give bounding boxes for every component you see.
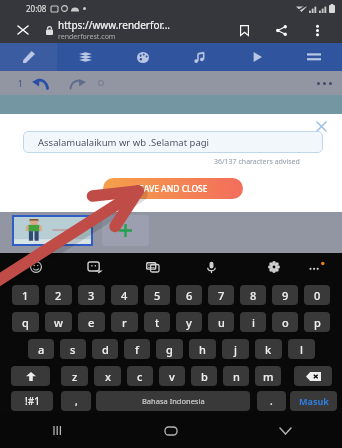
button[interactable]: Shift <box>11 366 50 386</box>
staticText: h <box>199 342 206 357</box>
staticText: https://www.renderfor... <box>58 18 171 32</box>
staticText: 4 <box>121 288 128 303</box>
button[interactable]: n <box>223 366 249 386</box>
button[interactable]: u <box>208 312 234 332</box>
button[interactable]: History <box>93 71 109 95</box>
button[interactable]: 3 <box>78 285 105 305</box>
button[interactable]: Redo <box>67 71 89 95</box>
button[interactable]: 4 <box>111 285 138 305</box>
staticText: 9 <box>282 288 289 303</box>
button[interactable]: 0 <box>304 285 330 305</box>
staticText: g <box>166 342 173 357</box>
button[interactable]: x <box>94 366 121 386</box>
button[interactable]: Home <box>114 413 228 448</box>
staticText: z <box>72 369 78 384</box>
button[interactable]: 7 <box>208 285 234 305</box>
button[interactable]: More <box>310 71 338 95</box>
button[interactable]: Share <box>260 17 302 43</box>
button[interactable]: Back <box>228 413 342 448</box>
button[interactable]: i <box>240 312 266 332</box>
button[interactable]: Close <box>311 116 331 136</box>
staticText: 5 <box>154 288 161 303</box>
button[interactable]: a <box>28 339 54 359</box>
button[interactable]: 5 <box>144 285 170 305</box>
staticText: d <box>102 342 109 357</box>
button[interactable]: More options <box>302 17 333 43</box>
staticText: u <box>218 315 225 330</box>
button[interactable]: t <box>144 312 170 332</box>
staticText: k <box>265 342 272 357</box>
button[interactable]: c <box>127 366 153 386</box>
staticText: w <box>54 315 63 330</box>
staticText: renderforest.com <box>58 32 116 42</box>
staticText: e <box>88 315 95 330</box>
button[interactable]: w <box>45 312 72 332</box>
button[interactable]: Preview <box>228 43 285 71</box>
button[interactable]: v <box>159 366 185 386</box>
staticText: x <box>105 369 111 384</box>
button[interactable]: q <box>12 312 39 332</box>
button[interactable]: Add scene <box>102 215 149 246</box>
button[interactable]: Backspace <box>294 366 332 386</box>
staticText: p <box>314 315 321 330</box>
staticText: r <box>122 315 127 330</box>
button[interactable]: 6 <box>176 285 202 305</box>
button[interactable]: e <box>78 312 105 332</box>
button[interactable]: Voice input <box>197 253 225 281</box>
button[interactable]: Recents <box>0 413 114 448</box>
button[interactable]: Emoji <box>22 253 50 281</box>
button[interactable]: f <box>124 339 150 359</box>
button[interactable]: SAVE AND CLOSE <box>103 178 243 199</box>
staticText: !#1 <box>25 394 40 408</box>
button[interactable]: g <box>156 339 183 359</box>
staticText: 3 <box>88 288 95 303</box>
button[interactable]: y <box>176 312 202 332</box>
button[interactable]: Masuk <box>290 391 337 411</box>
button[interactable]: z <box>61 366 88 386</box>
button[interactable]: Edit <box>0 43 57 71</box>
button[interactable]: k <box>255 339 282 359</box>
button[interactable]: . <box>257 391 286 411</box>
staticText: Bahasa Indonesia <box>142 396 205 406</box>
button[interactable]: d <box>92 339 118 359</box>
staticText: 6 <box>186 288 193 303</box>
button[interactable]: l <box>288 339 315 359</box>
button[interactable]: 9 <box>272 285 298 305</box>
staticText: t <box>155 315 160 330</box>
button[interactable]: More <box>302 253 330 281</box>
button[interactable]: !#1 <box>11 391 53 411</box>
button[interactable]: Music <box>171 43 228 71</box>
button[interactable]: Close tab <box>0 17 46 43</box>
staticText: n <box>233 369 240 384</box>
button[interactable]: r <box>111 312 138 332</box>
button[interactable]: Colors <box>114 43 171 71</box>
button[interactable]: Bahasa Indonesia <box>96 391 250 411</box>
button[interactable]: Assalamualaikum wr wb .Selamat pagi <box>23 131 323 153</box>
button[interactable]: b <box>191 366 217 386</box>
button[interactable]: m <box>255 366 281 386</box>
button[interactable]: p <box>304 312 330 332</box>
button[interactable]: s <box>60 339 86 359</box>
staticText: q <box>22 315 29 330</box>
staticText: c <box>137 369 143 384</box>
staticText: , <box>75 394 78 408</box>
button[interactable]: Clipboard <box>138 253 166 281</box>
staticText: b <box>201 369 208 384</box>
button[interactable]: Scene 1 <box>12 215 93 246</box>
button[interactable]: Stickers <box>80 253 108 281</box>
staticText: . <box>270 394 273 408</box>
button[interactable]: h <box>189 339 216 359</box>
button[interactable]: Bookmark <box>229 17 260 43</box>
staticText: y <box>186 315 192 330</box>
button[interactable]: , <box>61 391 91 411</box>
button[interactable]: Layers <box>57 43 114 71</box>
button[interactable]: Settings <box>260 253 288 281</box>
button[interactable]: Menu <box>285 43 342 71</box>
button[interactable]: 8 <box>240 285 266 305</box>
staticText: Assalamualaikum wr wb .Selamat pagi <box>38 136 210 149</box>
button[interactable]: Undo <box>29 71 51 95</box>
button[interactable]: 1 <box>12 285 39 305</box>
button[interactable]: j <box>222 339 249 359</box>
button[interactable]: 2 <box>45 285 72 305</box>
button[interactable]: o <box>272 312 298 332</box>
